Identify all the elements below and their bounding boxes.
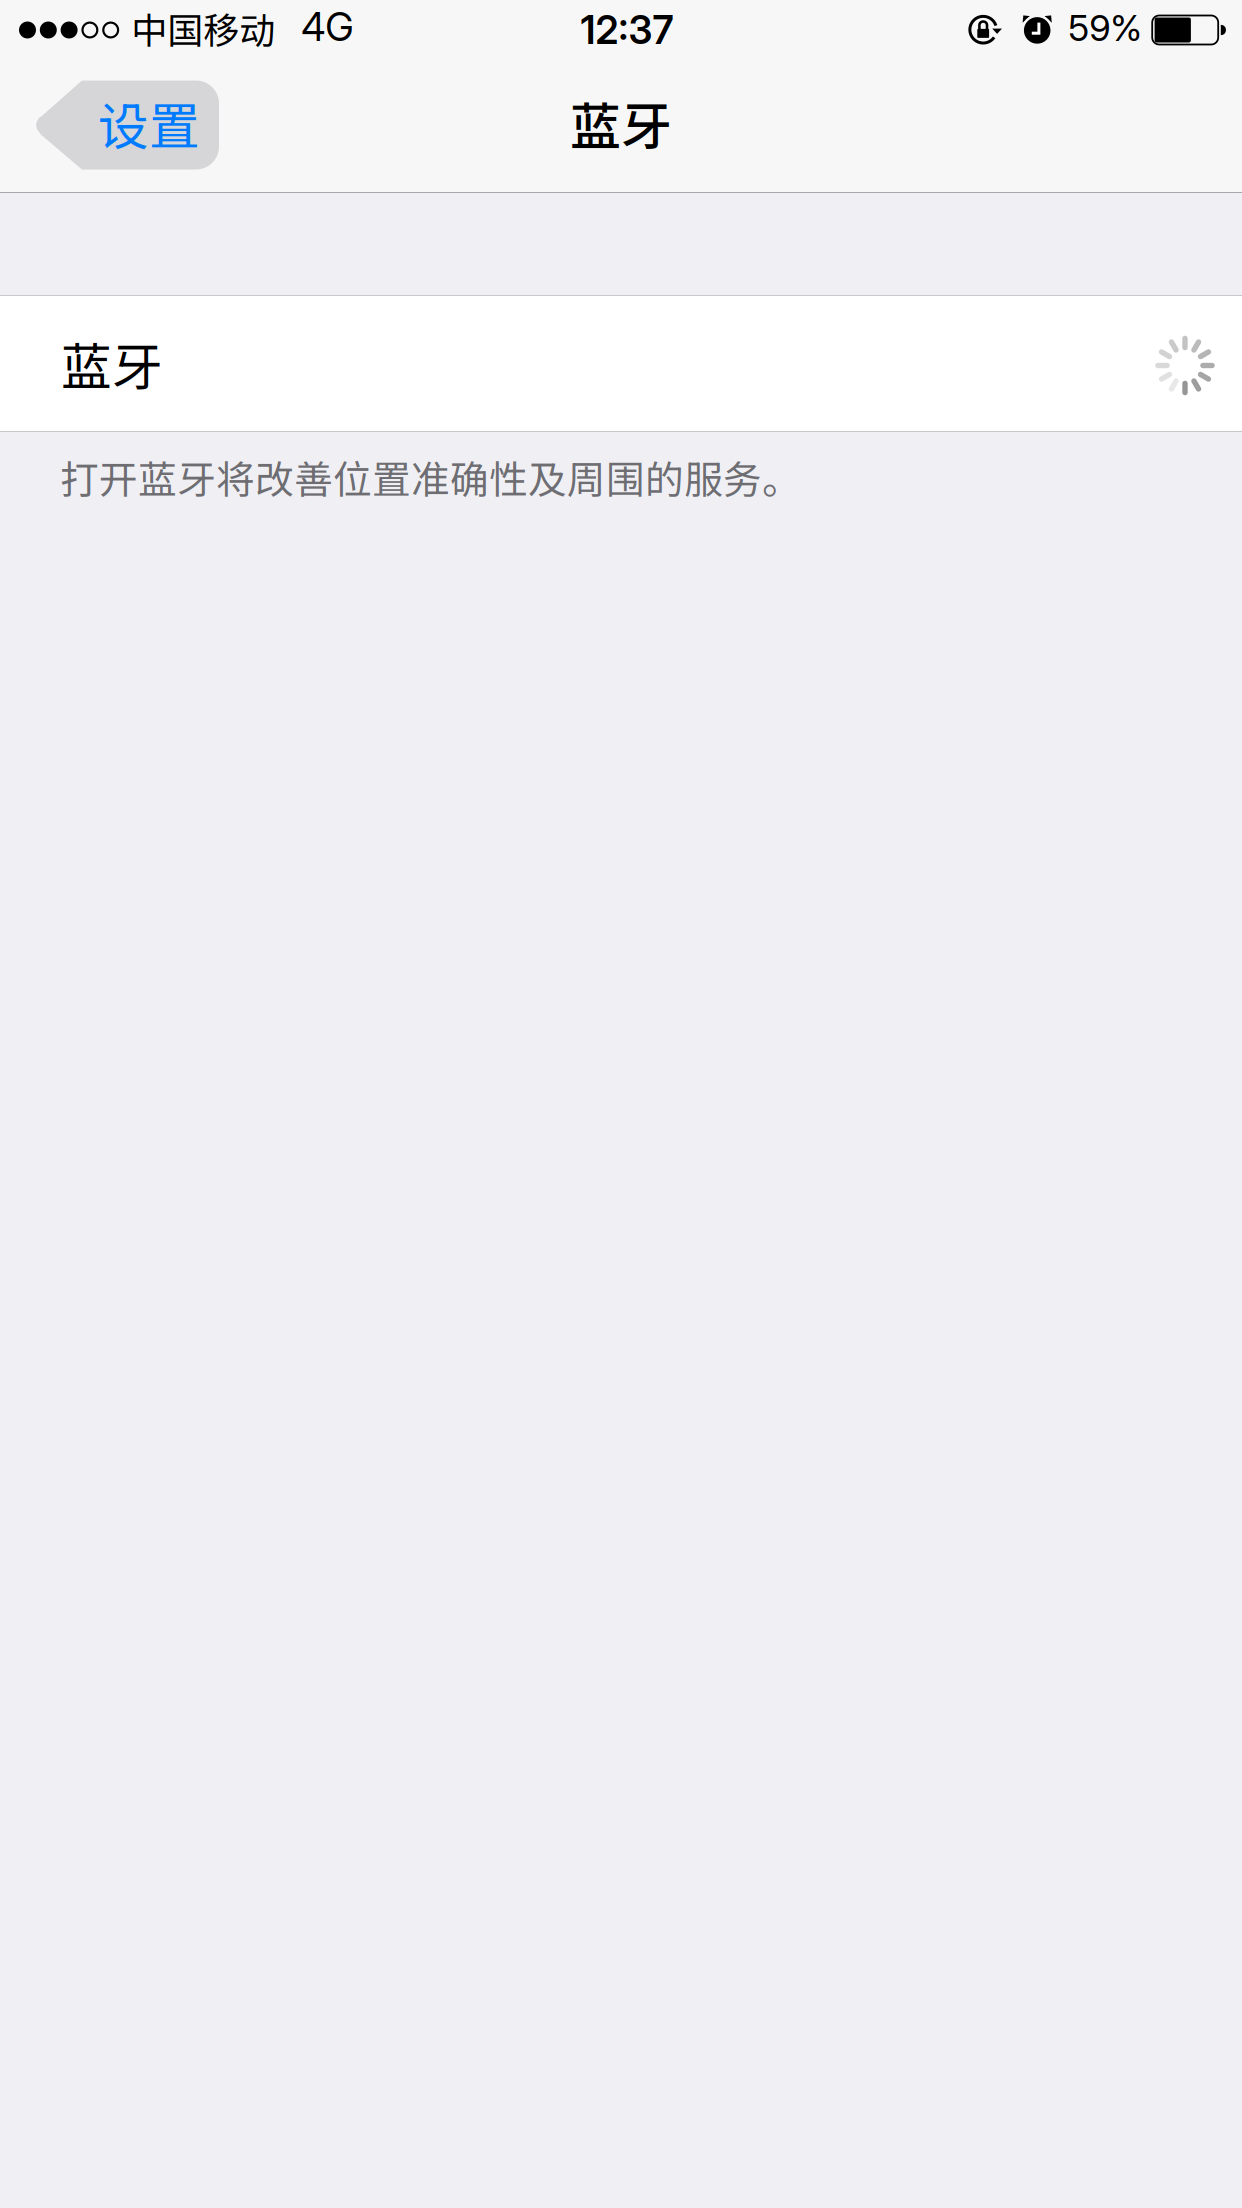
staticText: 中国移动 [131,2,275,54]
staticText: 蓝牙 [570,86,672,160]
staticText: 12:37 [580,7,673,53]
staticText: 打开蓝牙将改善位置准确性及周围的服务。 [60,449,801,505]
staticText: 设置 [98,86,200,160]
staticText: 59% [1068,6,1142,50]
staticText: 4G [301,4,353,50]
staticText: 蓝牙 [61,327,163,400]
button[interactable]: 蓝牙 [0,296,1242,431]
button[interactable]: 返回设置 [33,81,219,170]
